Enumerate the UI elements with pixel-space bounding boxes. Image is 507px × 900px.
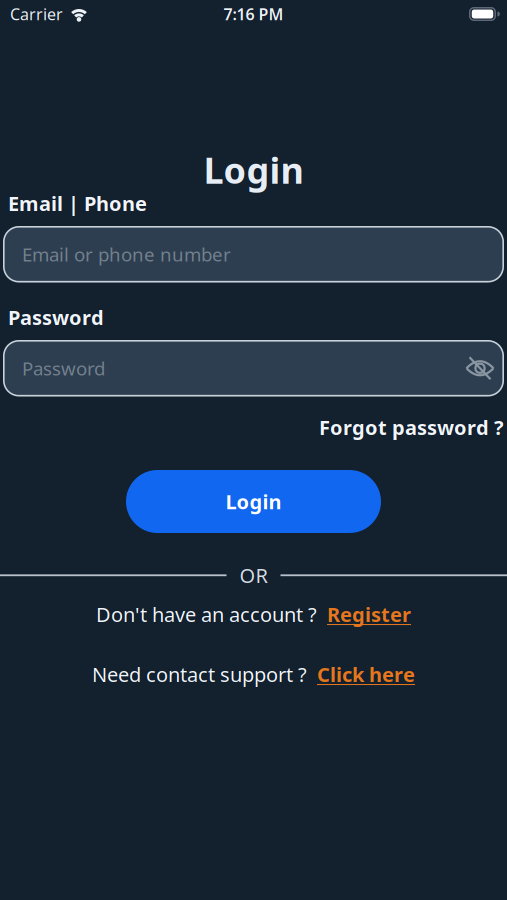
staticText: Email | Phone [8,190,147,217]
staticText: OR [239,562,267,589]
button[interactable]: Click here [317,661,415,688]
button[interactable]: Forgot password ? [319,414,504,441]
staticText: Login [225,488,281,515]
staticText: Click here [317,661,415,688]
button[interactable]: Email or phone number [3,226,504,282]
staticText: Forgot password ? [319,414,504,441]
staticText: Don't have an account ? [96,601,327,628]
button[interactable]: Register [327,601,411,628]
button[interactable]: Password [3,340,504,396]
staticText: Email or phone number [22,242,231,267]
button[interactable] [466,356,494,380]
staticText: Password [22,356,105,381]
staticText: Need contact support ? [92,661,317,688]
button[interactable]: Login [126,470,381,533]
staticText: Carrier [10,3,63,25]
staticText: Register [327,601,411,628]
staticText: Password [8,304,104,331]
staticText: Login [203,146,303,194]
staticText: 7:16 PM [223,3,283,25]
